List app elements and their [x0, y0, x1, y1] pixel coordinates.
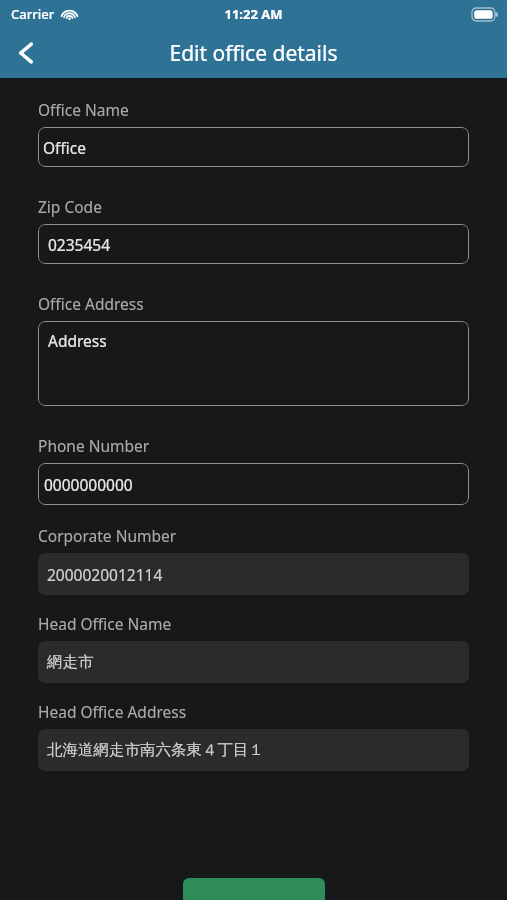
staticText: 2000020012114	[47, 564, 163, 585]
staticText: Zip Code	[38, 196, 102, 217]
button[interactable]: 網走市	[38, 641, 469, 683]
staticText: 0235454	[48, 234, 111, 255]
button[interactable]: 0235454	[38, 224, 469, 264]
staticText: Office	[43, 137, 86, 158]
staticText: 北海道網走市南六条東４丁目１	[47, 740, 264, 760]
button[interactable]: Office	[38, 127, 469, 167]
button[interactable]: 0000000000	[38, 463, 469, 505]
staticText: Address	[48, 330, 107, 351]
staticText: 0000000000	[44, 474, 133, 495]
button[interactable]: Save	[183, 878, 325, 900]
button[interactable]: 北海道網走市南六条東４丁目１	[38, 729, 469, 771]
staticText: Edit office details	[169, 39, 338, 68]
staticText: Head Office Address	[38, 701, 187, 722]
staticText: Head Office Name	[38, 613, 172, 634]
button[interactable]: Back	[0, 28, 52, 78]
staticText: 網走市	[47, 652, 94, 672]
staticText: 11:22 AM	[224, 5, 283, 23]
button[interactable]: 2000020012114	[38, 553, 469, 595]
staticText: Office Name	[38, 99, 129, 120]
staticText: Carrier	[11, 5, 55, 23]
button[interactable]: Address	[38, 321, 469, 406]
staticText: Phone Number	[38, 435, 150, 456]
staticText: Corporate Number	[38, 525, 177, 546]
staticText: Office Address	[38, 293, 144, 314]
